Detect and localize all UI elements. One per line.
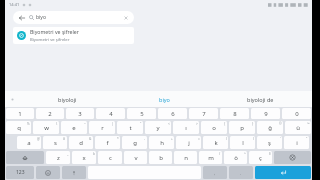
staticText: .: [240, 170, 242, 176]
staticText: $: [269, 152, 271, 156]
staticText: s: [54, 139, 57, 147]
button[interactable]: 1: [6, 108, 34, 119]
button[interactable]: v: [124, 151, 147, 164]
button[interactable]: y: [145, 121, 171, 134]
staticText: ": [140, 122, 142, 126]
staticText: 14:41: [9, 2, 20, 7]
button[interactable]: 2: [36, 108, 64, 119]
button[interactable]: s: [43, 136, 67, 149]
button[interactable]: p: [229, 121, 255, 134]
button[interactable]: l: [230, 136, 255, 149]
button[interactable]: ş: [257, 136, 282, 149]
staticText: ş: [268, 139, 271, 147]
staticText: ı: [185, 124, 187, 132]
staticText: ": [306, 137, 308, 141]
button[interactable]: c: [98, 151, 122, 164]
staticText: }: [252, 122, 254, 126]
staticText: %: [27, 122, 30, 126]
button[interactable]: ü: [285, 121, 311, 134]
button[interactable]: q: [6, 121, 31, 134]
button[interactable]: z: [46, 151, 70, 164]
button[interactable]: m: [199, 151, 222, 164]
staticText: 123: [16, 169, 25, 176]
staticText: g: [133, 139, 137, 147]
button[interactable]: ö: [224, 151, 247, 164]
staticText: t: [129, 124, 132, 132]
staticText: i: [296, 139, 298, 147]
staticText: ^: [244, 152, 246, 156]
staticText: l: [242, 139, 244, 147]
button[interactable]: Shift: [6, 151, 44, 164]
staticText: &: [89, 137, 92, 141]
button[interactable]: f: [95, 136, 120, 149]
staticText: h: [160, 139, 164, 147]
button[interactable]: biyoloji: [19, 91, 116, 107]
staticText: ): [253, 137, 254, 141]
button[interactable]: 3: [66, 108, 94, 119]
button[interactable]: Backspace: [274, 151, 311, 164]
button[interactable]: 4: [96, 108, 125, 119]
button[interactable]: o: [201, 121, 227, 134]
button[interactable]: x: [72, 151, 96, 164]
button[interactable]: 0: [282, 108, 311, 119]
button[interactable]: biyo: [116, 91, 212, 107]
button[interactable]: Back: [13, 11, 134, 24]
staticText: 7: [202, 110, 206, 118]
button[interactable]: 9: [251, 108, 280, 119]
button[interactable]: Enter: [255, 166, 311, 179]
staticText: b: [93, 152, 95, 156]
staticText: @: [37, 137, 40, 141]
staticText: {: [224, 122, 226, 126]
staticText: biyoloji de: [247, 96, 274, 103]
staticText: p: [240, 124, 244, 132]
staticText: ç: [259, 154, 262, 162]
button[interactable]: Clear: [122, 14, 130, 22]
button[interactable]: n: [174, 151, 197, 164]
staticText: *: [117, 137, 119, 141]
button[interactable]: ı: [173, 121, 199, 134]
button[interactable]: 5: [127, 108, 156, 119]
button[interactable]: w: [33, 121, 59, 134]
staticText: ğ: [268, 124, 272, 132]
button[interactable]: ç: [249, 151, 272, 164]
button[interactable]: a: [17, 136, 41, 149]
staticText: Biyometri ve şifreler: [30, 28, 79, 35]
button[interactable]: r: [89, 121, 115, 134]
staticText: =: [198, 137, 200, 141]
staticText: x: [82, 154, 86, 162]
staticText: ': [280, 137, 281, 141]
button[interactable]: g: [122, 136, 147, 149]
button[interactable]: ğ: [257, 121, 283, 134]
button[interactable]: Biyometri ve şifreler: [13, 27, 134, 44]
button[interactable]: Emoji: [36, 166, 60, 179]
button[interactable]: 7: [189, 108, 218, 119]
button[interactable]: Numbers and symbols: [6, 166, 34, 179]
button[interactable]: Voice input: [62, 166, 86, 179]
button[interactable]: 6: [158, 108, 187, 119]
button[interactable]: j: [176, 136, 201, 149]
staticText: w: [44, 124, 49, 132]
button[interactable]: More suggestions: [5, 91, 19, 107]
staticText: 0: [295, 110, 299, 118]
button[interactable]: 8: [220, 108, 249, 119]
button[interactable]: d: [69, 136, 93, 149]
staticText: ©: [279, 122, 282, 126]
button[interactable]: k: [203, 136, 228, 149]
staticText: ö: [234, 154, 238, 162]
button[interactable]: t: [117, 121, 143, 134]
staticText: m: [208, 154, 214, 162]
staticText: #: [63, 137, 66, 141]
button[interactable]: b: [149, 151, 172, 164]
button[interactable]: e: [61, 121, 87, 134]
staticText: >: [196, 122, 198, 126]
staticText: biyo: [159, 96, 170, 103]
button[interactable]: Back: [17, 13, 26, 22]
button[interactable]: h: [149, 136, 174, 149]
button[interactable]: biyoloji de: [212, 91, 308, 107]
staticText: 8: [233, 110, 237, 118]
button[interactable]: i: [284, 136, 309, 149]
staticText: 5: [140, 110, 144, 118]
